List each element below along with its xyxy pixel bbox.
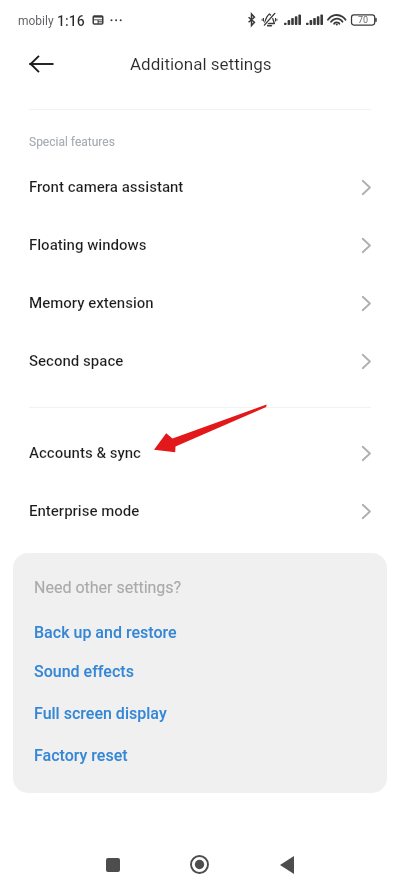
button[interactable]: Accounts & sync — [0, 424, 400, 482]
staticText: Special features — [29, 135, 115, 149]
button[interactable]: Home — [173, 838, 226, 889]
button[interactable]: Recent apps — [86, 838, 139, 889]
staticText: Front camera assistant — [29, 178, 184, 196]
button[interactable]: Factory reset — [22, 740, 378, 770]
staticText: Need other settings? — [34, 578, 182, 597]
staticText: Accounts & sync — [29, 444, 141, 462]
button[interactable]: Back — [260, 838, 313, 889]
staticText: Factory reset — [34, 746, 128, 765]
button[interactable]: Full screen display — [22, 698, 378, 728]
staticText: Floating windows — [29, 236, 147, 254]
staticText: 1:16 — [57, 13, 85, 29]
staticText: Memory extension — [29, 294, 154, 312]
staticText: Back up and restore — [34, 623, 177, 642]
staticText: mobily — [18, 14, 54, 28]
staticText: Sound effects — [34, 662, 134, 681]
button[interactable]: Sound effects — [22, 656, 378, 686]
button[interactable]: Enterprise mode — [0, 482, 400, 540]
button[interactable]: Floating windows — [0, 216, 400, 274]
button[interactable]: Front camera assistant — [0, 158, 400, 216]
staticText: Second space — [29, 352, 124, 370]
staticText: Full screen display — [34, 704, 167, 723]
staticText: Enterprise mode — [29, 502, 140, 520]
staticText: Additional settings — [130, 54, 272, 74]
button[interactable]: Second space — [0, 332, 400, 390]
button[interactable]: Back — [18, 41, 64, 87]
staticText: 70 — [358, 15, 369, 26]
button[interactable]: Memory extension — [0, 274, 400, 332]
button[interactable]: Back up and restore — [22, 617, 378, 647]
